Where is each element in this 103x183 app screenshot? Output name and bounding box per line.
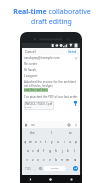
button[interactable]: Send <box>67 49 78 54</box>
staticText: q <box>24 139 27 144</box>
staticText: v <box>49 157 51 162</box>
staticText: b <box>55 157 58 162</box>
button[interactable]: Format <box>31 123 35 127</box>
staticText: n <box>61 157 64 162</box>
staticText: p <box>75 139 78 144</box>
button[interactable]: f <box>41 146 47 155</box>
button[interactable]: More options <box>74 123 78 127</box>
button[interactable]: a <box>25 146 30 155</box>
staticText: c <box>43 157 45 162</box>
button[interactable]: i <box>61 137 67 146</box>
staticText: and the tool bins <box>24 88 48 92</box>
staticText: to <box>69 131 72 135</box>
button[interactable]: v <box>47 155 53 164</box>
button[interactable]: n <box>59 155 65 164</box>
other: Expand <box>74 56 78 60</box>
staticText: m <box>66 157 70 162</box>
button[interactable]: Backspace <box>71 155 79 164</box>
staticText: f <box>43 148 45 153</box>
staticText: sarahgray@example.com <box>24 56 60 60</box>
button[interactable]: s <box>30 146 35 155</box>
staticText: , <box>34 167 35 171</box>
button[interactable]: to <box>61 129 80 136</box>
button[interactable]: j <box>59 146 65 155</box>
button[interactable]: q <box>23 137 28 146</box>
button[interactable]: Recents <box>61 175 82 183</box>
button[interactable]: r <box>38 137 43 146</box>
button[interactable]: y <box>49 137 55 146</box>
button[interactable]: b <box>53 155 59 164</box>
staticText: j <box>62 148 63 153</box>
staticText: Attached the invoice for the architect s… <box>24 80 78 88</box>
button[interactable]: Home <box>40 175 61 183</box>
button[interactable]: the <box>22 129 42 136</box>
button[interactable]: c <box>41 155 47 164</box>
button[interactable]: x <box>35 155 41 164</box>
staticText: . <box>68 167 69 171</box>
staticText: Hi Sarah, <box>24 68 38 72</box>
button[interactable]: Settings <box>67 123 71 127</box>
staticText: g <box>49 148 52 153</box>
staticText: u <box>57 139 60 144</box>
staticText: w <box>29 139 32 144</box>
staticText: d <box>37 148 40 153</box>
button[interactable]: Back <box>20 175 40 183</box>
button[interactable]: d <box>35 146 41 155</box>
button[interactable]: Comma <box>32 165 37 172</box>
button[interactable]: Re: order <box>24 61 78 67</box>
button[interactable]: w <box>28 137 33 146</box>
staticText: x <box>37 157 39 162</box>
staticText: t <box>45 139 47 144</box>
staticText: Send <box>68 49 77 54</box>
button[interactable]: l <box>71 146 77 155</box>
staticText: o <box>69 139 72 144</box>
staticText: ?123 <box>25 167 31 171</box>
staticText: I <box>51 131 53 135</box>
staticText: y <box>51 139 53 144</box>
button[interactable]: Add person <box>24 123 28 127</box>
button[interactable]: t <box>43 137 49 146</box>
button[interactable]: Space <box>44 166 65 171</box>
staticText: z <box>32 157 34 162</box>
button[interactable]: sarahgray@example.com <box>24 55 78 61</box>
staticText: i <box>64 139 65 144</box>
button[interactable]: Shift <box>23 155 30 164</box>
staticText: l <box>74 148 75 153</box>
button[interactable]: u <box>55 137 61 146</box>
staticText: INVOICE-170431-7.pdf <box>25 102 53 106</box>
staticText: 84 KB <box>25 106 32 109</box>
staticText: s <box>32 148 34 153</box>
button[interactable]: INVOICE-170431-7.pdf <box>24 101 54 110</box>
staticText: r <box>40 139 42 144</box>
button[interactable]: g <box>47 146 53 155</box>
staticText: h <box>55 148 58 153</box>
button[interactable]: Enter <box>73 166 78 171</box>
staticText: draft editing <box>31 17 72 27</box>
button[interactable]: o <box>67 137 73 146</box>
staticText: a <box>27 148 29 153</box>
staticText: the <box>30 131 35 135</box>
staticText: k <box>67 148 69 153</box>
button[interactable]: h <box>53 146 59 155</box>
button[interactable]: p <box>73 137 79 146</box>
staticText: e <box>35 139 37 144</box>
staticText: English <box>51 167 59 170</box>
staticText: Cancel <box>25 49 36 54</box>
staticText: I support <box>24 74 38 78</box>
button[interactable]: Cancel <box>24 49 37 54</box>
button[interactable]: m <box>65 155 71 164</box>
staticText: I've attached the PDF of our last order. <box>24 95 78 99</box>
staticText: Real-time collaborative <box>13 7 91 17</box>
button[interactable]: I <box>42 129 61 136</box>
button[interactable]: Emoji <box>37 165 43 172</box>
button[interactable]: ?123 <box>23 165 32 172</box>
button[interactable]: e <box>33 137 38 146</box>
button[interactable]: z <box>30 155 35 164</box>
staticText: Re: order <box>24 62 38 66</box>
button[interactable]: k <box>65 146 71 155</box>
